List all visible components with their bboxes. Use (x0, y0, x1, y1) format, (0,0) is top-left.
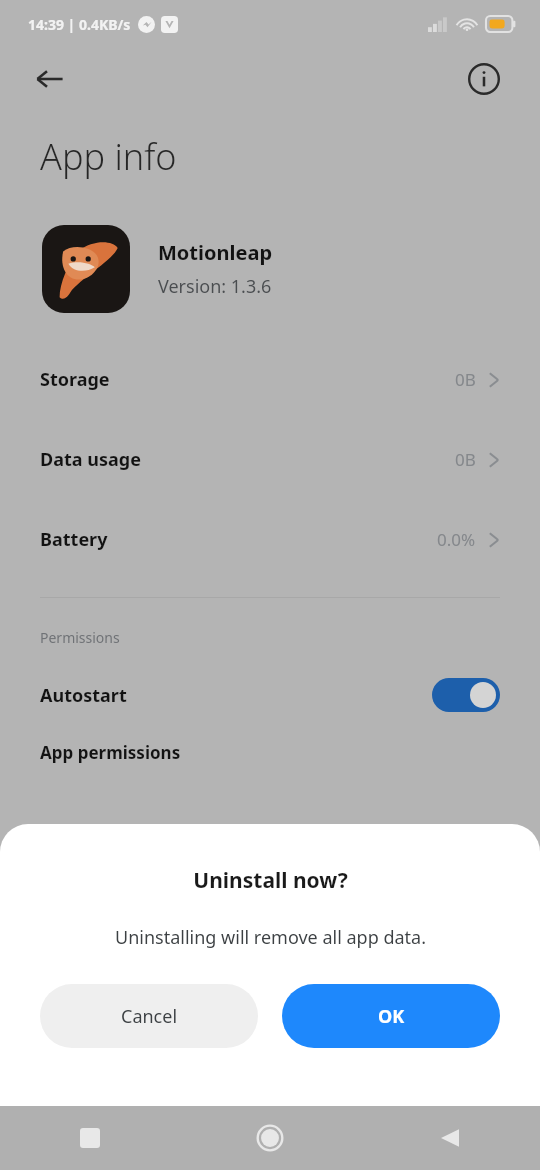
button[interactable]: Autostart toggle, on (432, 678, 500, 712)
staticText: 0B (455, 368, 476, 391)
staticText: 14:39 | 0.4KB/s (28, 15, 131, 34)
staticText: App info (40, 132, 177, 181)
button[interactable]: Battery (0, 499, 540, 579)
button[interactable]: Recent apps (0, 1106, 180, 1170)
staticText: 0.0% (437, 528, 476, 551)
button[interactable]: Back (360, 1106, 540, 1170)
staticText: Autostart (40, 683, 127, 708)
button[interactable]: App details info (462, 57, 506, 101)
button[interactable]: Back (26, 55, 74, 103)
staticText: Data usage (40, 447, 141, 472)
button[interactable]: Data usage (0, 419, 540, 499)
staticText: Cancel (121, 1004, 178, 1029)
staticText: App permissions (40, 741, 181, 764)
staticText: Uninstall now? (193, 866, 348, 895)
staticText: Storage (40, 367, 110, 392)
staticText: Version: 1.3.6 (158, 274, 272, 299)
button[interactable]: OK (282, 984, 500, 1048)
staticText: Motionleap (158, 239, 273, 266)
staticText: Uninstalling will remove all app data. (115, 925, 426, 950)
button[interactable]: Cancel (40, 984, 258, 1048)
button[interactable]: Autostart (0, 671, 540, 719)
staticText: Permissions (40, 628, 120, 647)
button[interactable]: Storage (0, 339, 540, 419)
staticText: 0B (455, 448, 476, 471)
button[interactable]: Home (180, 1106, 360, 1170)
staticText: OK (378, 1004, 405, 1029)
staticText: Battery (40, 527, 108, 552)
